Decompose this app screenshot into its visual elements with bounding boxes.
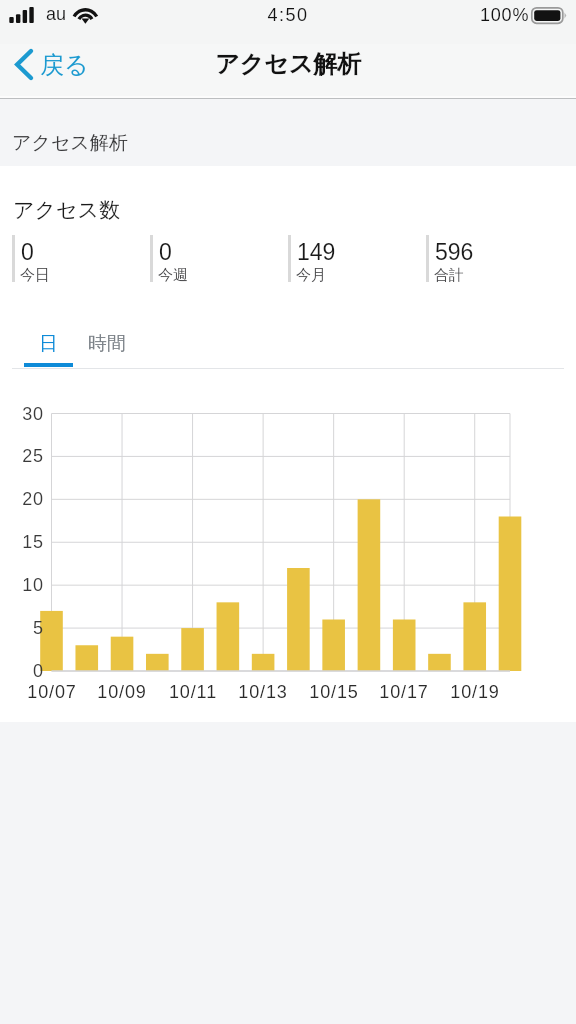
staticText: アクセス解析 <box>12 131 128 155</box>
staticText: 10 <box>4 575 44 595</box>
staticText: 時間 <box>88 332 126 356</box>
staticText: 10/13 <box>228 682 298 702</box>
staticText: 0 <box>4 661 44 681</box>
staticText: 4:50 <box>0 5 576 25</box>
other: Wi-Fi <box>72 0 100 26</box>
staticText: 合計 <box>434 266 464 285</box>
button[interactable]: 時間 <box>87 326 127 362</box>
staticText: 10/07 <box>17 682 87 702</box>
staticText: 今週 <box>158 266 188 285</box>
button[interactable]: 596 <box>426 235 564 282</box>
staticText: 25 <box>4 446 44 466</box>
staticText: 10/11 <box>158 682 228 702</box>
staticText: 20 <box>4 489 44 509</box>
staticText: 0 <box>21 239 34 265</box>
staticText: 今日 <box>20 266 50 285</box>
staticText: 10/19 <box>440 682 510 702</box>
other: Battery 100 percent <box>531 7 571 25</box>
staticText: アクセス解析 <box>215 49 362 79</box>
staticText: 日 <box>39 332 58 356</box>
staticText: 100% <box>480 5 530 25</box>
staticText: 今月 <box>296 266 326 285</box>
staticText: 149 <box>297 239 336 265</box>
staticText: au <box>46 4 67 24</box>
staticText: 596 <box>435 239 474 265</box>
staticText: 15 <box>4 532 44 552</box>
button[interactable]: 0 <box>12 235 150 282</box>
staticText: アクセス数 <box>13 197 120 223</box>
staticText: 戻る <box>40 50 89 80</box>
staticText: 10/15 <box>299 682 369 702</box>
staticText: 10/09 <box>87 682 157 702</box>
staticText: 10/17 <box>369 682 439 702</box>
staticText: 0 <box>159 239 172 265</box>
button[interactable]: 日 <box>24 326 73 362</box>
staticText: 5 <box>4 618 44 638</box>
other: Cellular signal <box>9 0 37 26</box>
button[interactable]: 149 <box>288 235 426 282</box>
staticText: 30 <box>4 404 44 424</box>
other: Back <box>14 48 34 81</box>
button[interactable]: Back <box>0 46 101 87</box>
button[interactable]: 0 <box>150 235 288 282</box>
